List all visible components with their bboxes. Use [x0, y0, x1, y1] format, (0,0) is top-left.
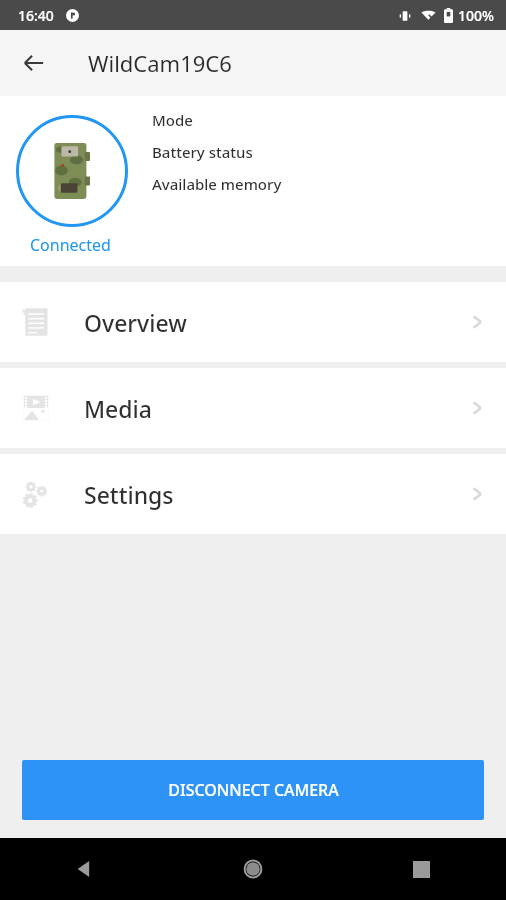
staticText: DISCONNECT CAMERA [168, 779, 339, 801]
staticText: Overview [84, 307, 187, 338]
staticText: 16:40 [18, 6, 54, 25]
button[interactable]: Home [168, 838, 337, 900]
staticText: Media [84, 393, 152, 424]
button[interactable]: Recent apps [337, 838, 506, 900]
staticText: Mode [152, 110, 193, 130]
button[interactable]: Overview [0, 282, 506, 362]
button[interactable]: Back [0, 838, 168, 900]
staticText: Connected [30, 234, 111, 256]
staticText: Battery status [152, 142, 253, 162]
button[interactable]: DISCONNECT CAMERA [22, 760, 484, 820]
staticText: Settings [84, 479, 174, 510]
staticText: Available memory [152, 174, 282, 194]
staticText: WildCam19C6 [88, 48, 232, 78]
button[interactable]: Media [0, 368, 506, 448]
button[interactable]: Settings [0, 454, 506, 534]
button[interactable]: Back [10, 39, 58, 87]
staticText: 100% [458, 6, 494, 25]
